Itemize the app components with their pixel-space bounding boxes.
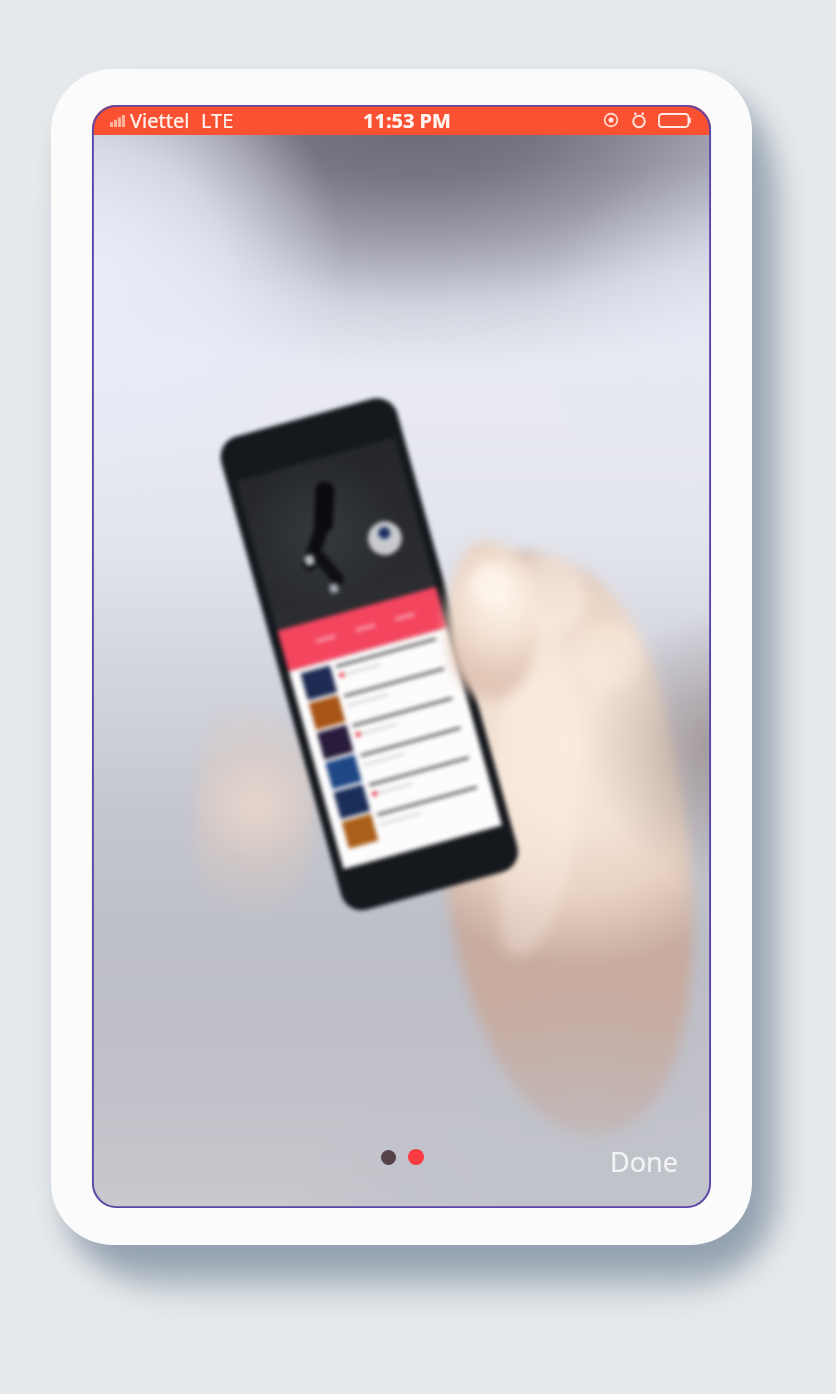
staticText: Done xyxy=(610,1143,678,1180)
button[interactable]: Done xyxy=(596,1134,692,1189)
staticText: Viettel xyxy=(130,107,190,134)
staticText: 11:53 PM xyxy=(363,107,451,134)
button[interactable]: Page 2 xyxy=(408,1149,424,1165)
other: Rotation lock xyxy=(603,112,619,128)
other: Battery xyxy=(659,114,691,127)
staticText: LTE xyxy=(201,107,234,134)
button[interactable]: Page 1 xyxy=(381,1150,396,1165)
other: Alarm xyxy=(631,112,647,128)
